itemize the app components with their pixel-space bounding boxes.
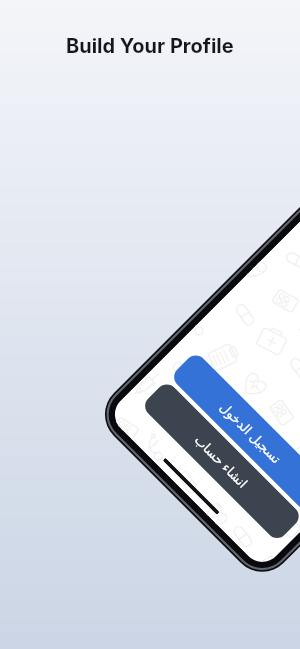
- staticText: تسجيل الدخول: [216, 398, 286, 467]
- button[interactable]: انشاء حساب: [141, 380, 300, 542]
- button[interactable]: تسجيل الدخول: [170, 351, 300, 513]
- staticText: انشاء حساب: [191, 431, 252, 492]
- staticText: Build Your Profile: [66, 34, 234, 58]
